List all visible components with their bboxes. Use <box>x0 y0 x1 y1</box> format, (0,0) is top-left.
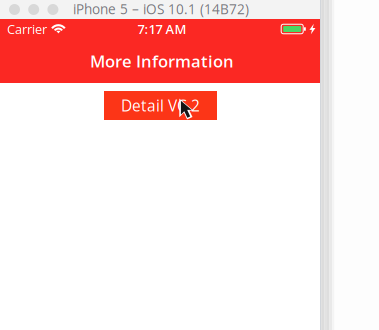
staticText: Detail VC 2 <box>121 95 200 116</box>
button[interactable]: Detail VC 2 <box>104 91 217 120</box>
staticText: 7:17 AM <box>137 20 186 38</box>
staticText: Carrier <box>7 20 47 38</box>
staticText: iPhone 5 – iOS 10.1 (14B72) <box>73 0 249 18</box>
staticText: More Information <box>90 50 234 72</box>
